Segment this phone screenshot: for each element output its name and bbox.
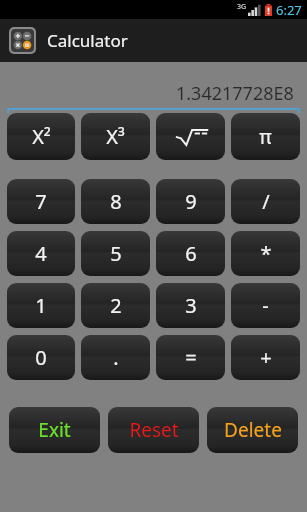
button[interactable]: 0 <box>7 335 75 380</box>
button[interactable]: 1 <box>7 283 75 328</box>
button[interactable]: . <box>81 335 150 380</box>
button[interactable]: 9 <box>156 179 225 224</box>
staticText: X² <box>32 123 51 150</box>
button[interactable]: 4 <box>7 231 75 276</box>
button[interactable]: / <box>231 179 300 224</box>
button[interactable]: - <box>231 283 300 328</box>
staticText: + <box>260 344 272 371</box>
staticText: 6:27 <box>276 1 302 19</box>
button[interactable]: Reset <box>108 407 199 453</box>
staticText: 4 <box>35 240 47 267</box>
staticText: 6 <box>185 240 197 267</box>
staticText: / <box>262 188 270 215</box>
staticText: 7 <box>35 188 47 215</box>
button[interactable]: * <box>231 231 300 276</box>
button[interactable]: 5 <box>81 231 150 276</box>
staticText: * <box>260 240 272 267</box>
staticText: 3G <box>237 2 247 12</box>
staticText: = <box>185 344 197 371</box>
button[interactable]: X³ <box>81 113 150 160</box>
staticText: 5 <box>110 240 122 267</box>
button[interactable]: Calculator <box>0 19 307 62</box>
button[interactable]: 7 <box>7 179 75 224</box>
button[interactable]: 6 <box>156 231 225 276</box>
staticText: 3 <box>185 292 197 319</box>
button[interactable]: Exit <box>9 407 100 453</box>
staticText: Exit <box>38 417 71 443</box>
staticText: 2 <box>110 292 122 319</box>
staticText: π <box>259 124 272 150</box>
button[interactable]: π <box>231 113 300 160</box>
staticText: 0 <box>35 344 47 371</box>
staticText: X³ <box>106 123 125 150</box>
button[interactable]: Square root <box>156 113 225 160</box>
staticText: Calculator <box>47 29 128 52</box>
button[interactable]: = <box>156 335 225 380</box>
button[interactable]: Delete <box>207 407 298 453</box>
button[interactable]: + <box>231 335 300 380</box>
staticText: 1 <box>35 292 47 319</box>
staticText: . <box>113 344 119 371</box>
button[interactable]: 3 <box>156 283 225 328</box>
staticText: Delete <box>224 417 282 443</box>
button[interactable]: X² <box>7 113 75 160</box>
staticText: 1.34217728E8 <box>176 81 294 106</box>
staticText: 8 <box>110 188 122 215</box>
button[interactable]: 2 <box>81 283 150 328</box>
staticText: - <box>262 292 269 319</box>
button[interactable]: 8 <box>81 179 150 224</box>
staticText: 9 <box>185 188 197 215</box>
staticText: Reset <box>129 417 179 443</box>
